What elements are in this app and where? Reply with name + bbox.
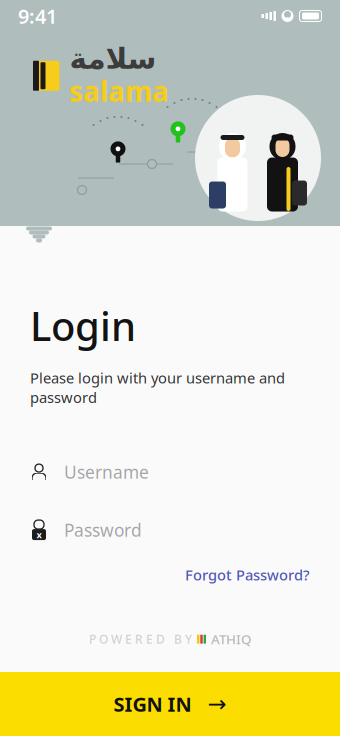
staticText: →: [207, 691, 226, 717]
button[interactable]: SIGN IN: [0, 672, 340, 736]
button[interactable]: x: [30, 507, 310, 553]
staticText: Login: [30, 299, 136, 352]
button[interactable]: Forgot Password?: [185, 559, 310, 591]
staticText: Please login with your username and pass…: [30, 368, 285, 407]
staticText: Forgot Password?: [185, 565, 310, 585]
staticText: Password: [64, 519, 142, 542]
staticText: SIGN IN: [113, 691, 191, 717]
staticText: P O W E R E D B Y: [89, 631, 192, 647]
staticText: Username: [64, 461, 149, 484]
staticText: salama: [69, 72, 169, 109]
staticText: x: [36, 528, 41, 541]
button[interactable]: Username: [30, 449, 310, 495]
staticText: سلامة: [69, 42, 156, 75]
staticText: 9:41: [18, 3, 57, 29]
staticText: ATHIQ: [211, 630, 251, 648]
